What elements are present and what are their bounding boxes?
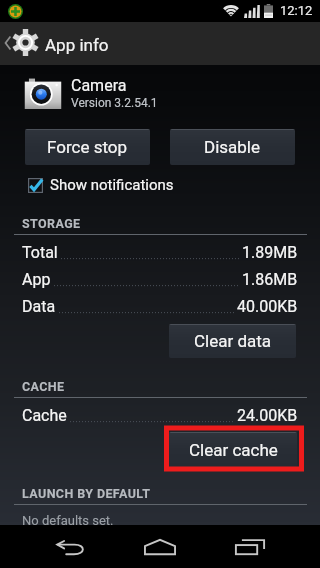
button[interactable]: Total: [22, 239, 298, 265]
staticText: Clear data: [194, 331, 272, 351]
button[interactable]: Navigate up: [0, 22, 108, 65]
staticText: No defaults set.: [22, 513, 114, 528]
staticText: STORAGE: [22, 216, 81, 231]
staticText: 24.00KB: [237, 406, 298, 425]
staticText: Total: [22, 243, 58, 262]
staticText: 1.89MB: [242, 243, 298, 262]
staticText: Cache: [22, 406, 67, 425]
button[interactable]: App: [22, 266, 298, 292]
button[interactable]: Clear cache: [169, 432, 297, 467]
staticText: 1.86MB: [242, 270, 298, 289]
staticText: Clear cache: [189, 440, 278, 460]
button[interactable]: Force stop: [25, 129, 150, 165]
staticText: 12:12: [280, 3, 313, 18]
button[interactable]: Data: [22, 293, 298, 319]
staticText: 40.00KB: [237, 297, 298, 316]
staticText: LAUNCH BY DEFAULT: [22, 486, 151, 501]
staticText: Show notifications: [50, 176, 174, 194]
button[interactable]: Recent apps: [220, 525, 280, 568]
button[interactable]: Disable: [170, 129, 295, 165]
staticText: Camera: [71, 76, 127, 95]
staticText: Data: [22, 297, 56, 316]
button[interactable]: Show notifications: [28, 175, 174, 195]
staticText: Force stop: [47, 137, 128, 157]
staticText: Version 3.2.54.1: [71, 96, 158, 110]
button[interactable]: Back: [41, 525, 101, 568]
button[interactable]: Clear data: [169, 324, 296, 358]
staticText: Disable: [204, 137, 261, 157]
button[interactable]: Cache: [22, 402, 298, 428]
staticText: App: [22, 270, 51, 289]
staticText: App info: [45, 35, 109, 55]
staticText: CACHE: [22, 379, 65, 394]
button[interactable]: Home: [130, 525, 190, 568]
